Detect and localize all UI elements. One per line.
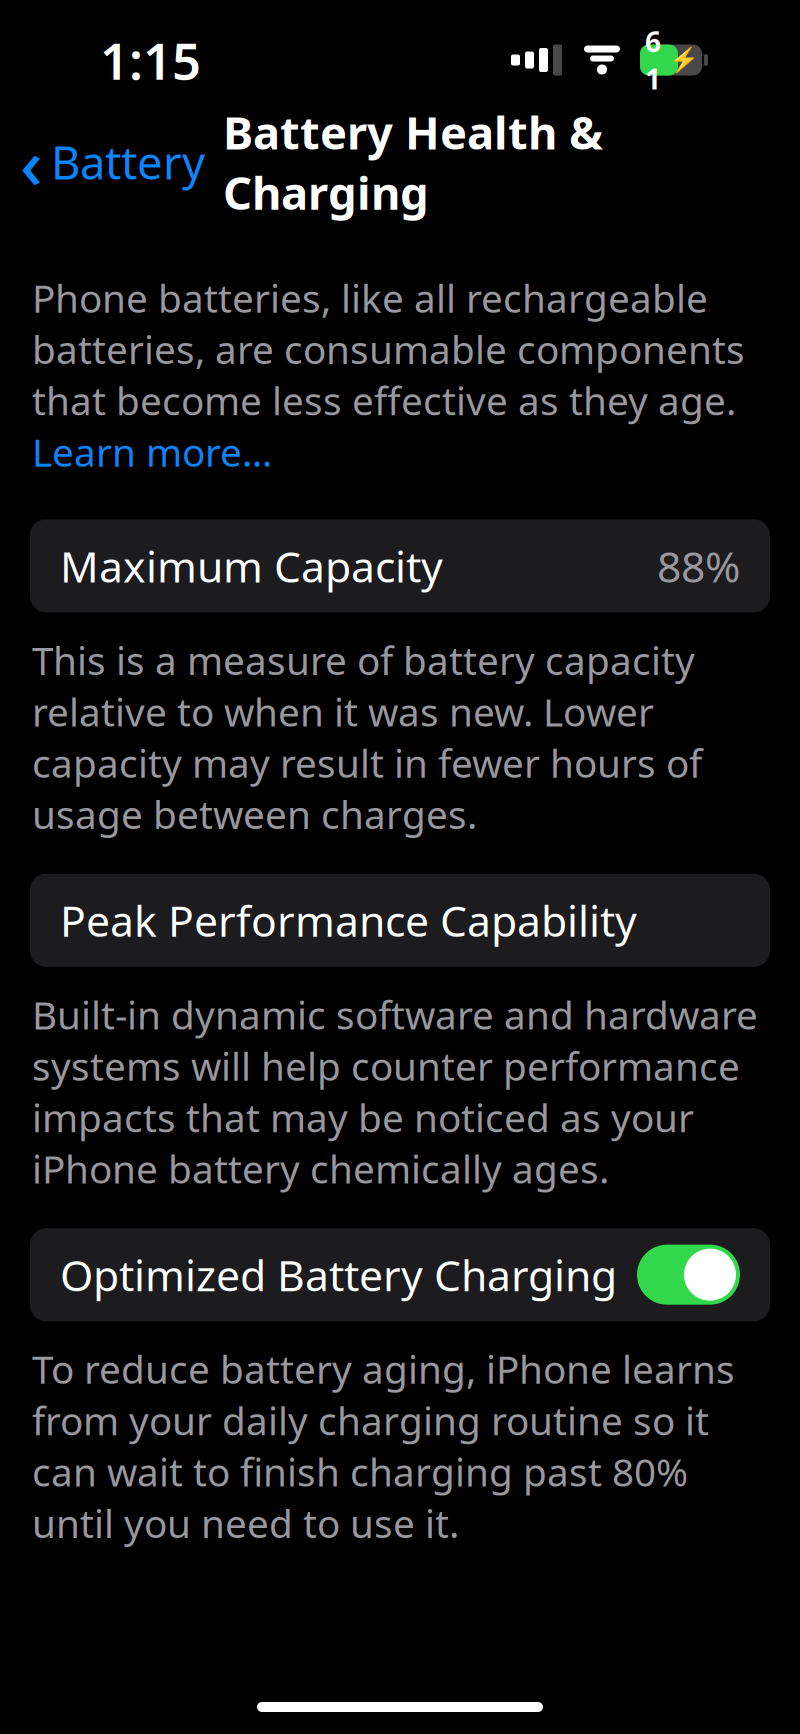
staticText: 88% <box>657 538 740 594</box>
staticText: 1:15 <box>100 26 201 94</box>
staticText: Built-in dynamic software and hardware s… <box>32 989 758 1194</box>
staticText: Maximum Capacity <box>60 538 443 594</box>
staticText: Battery <box>51 132 205 192</box>
button[interactable]: ‹ <box>0 108 205 216</box>
button[interactable]: Maximum Capacity <box>30 519 770 612</box>
staticText: Optimized Battery Charging <box>60 1246 617 1303</box>
staticText: Peak Performance Capability <box>60 892 637 949</box>
button[interactable]: Optimized Battery Charging <box>30 1228 770 1321</box>
staticText: To reduce battery aging, iPhone learns f… <box>32 1343 735 1549</box>
staticText: This is a measure of battery capacity re… <box>32 634 702 840</box>
staticText: ‹ <box>20 116 43 208</box>
staticText: Learn more... <box>32 426 272 477</box>
button[interactable]: Learn more... <box>32 426 272 477</box>
staticText: Battery Health & Charging <box>223 102 603 222</box>
staticText: Phone batteries, like all rechargeable b… <box>32 272 746 426</box>
staticText: ⚡ <box>669 46 699 74</box>
button[interactable]: Peak Performance Capability <box>30 874 770 967</box>
staticText: 61 <box>645 23 661 97</box>
